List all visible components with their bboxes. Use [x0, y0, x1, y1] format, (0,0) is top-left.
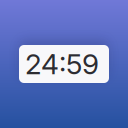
button[interactable]: Timer 24:59	[19, 45, 109, 83]
staticText: 24:59	[25, 47, 99, 81]
